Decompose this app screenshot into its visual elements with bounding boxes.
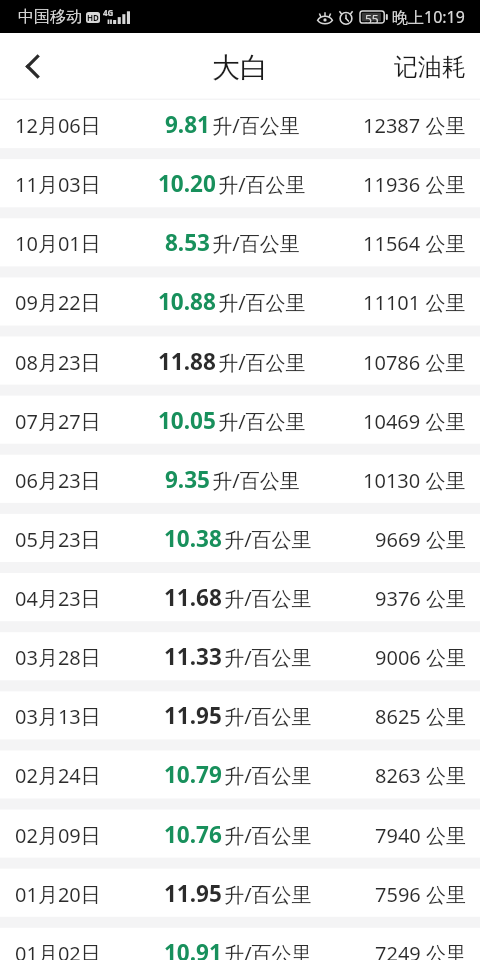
staticText: 9669 公里 — [375, 526, 466, 553]
button[interactable]: 10月01日 — [0, 218, 480, 266]
staticText: 9.35 升/百公里 — [165, 464, 300, 495]
staticText: 大白 — [212, 50, 268, 85]
staticText: 10.76 升/百公里 — [164, 819, 312, 850]
button[interactable]: 03月28日 — [0, 632, 480, 680]
button[interactable]: 01月02日 — [0, 928, 480, 960]
staticText: 05月23日 — [15, 526, 101, 553]
staticText: 11.95 升/百公里 — [164, 878, 312, 909]
staticText: 12387 公里 — [363, 112, 466, 139]
staticText: 11564 公里 — [363, 230, 466, 257]
staticText: 10469 公里 — [363, 408, 466, 435]
staticText: 8.53 升/百公里 — [165, 227, 300, 258]
button[interactable]: 12月06日 — [0, 100, 480, 148]
staticText: 11.95 升/百公里 — [164, 700, 312, 731]
staticText: 11.33 升/百公里 — [164, 641, 312, 672]
staticText: 8263 公里 — [375, 762, 466, 789]
staticText: 07月27日 — [15, 408, 101, 435]
staticText: 10130 公里 — [363, 467, 466, 494]
button[interactable]: 07月27日 — [0, 396, 480, 444]
button[interactable]: 09月22日 — [0, 277, 480, 325]
staticText: 55 — [365, 11, 379, 23]
staticText: 11101 公里 — [363, 289, 466, 316]
button[interactable]: 11月03日 — [0, 159, 480, 207]
staticText: 11936 公里 — [363, 171, 466, 198]
staticText: 10月01日 — [15, 230, 101, 257]
button[interactable]: 06月23日 — [0, 455, 480, 503]
staticText: 11.68 升/百公里 — [164, 582, 312, 613]
button[interactable]: Back — [0, 33, 62, 98]
staticText: 8625 公里 — [375, 703, 466, 730]
button[interactable]: 04月23日 — [0, 573, 480, 621]
staticText: 10.20 升/百公里 — [158, 168, 306, 199]
button[interactable]: 03月13日 — [0, 691, 480, 739]
staticText: 中国移动 — [18, 7, 82, 27]
staticText: HD — [87, 12, 99, 23]
staticText: 11月03日 — [15, 171, 101, 198]
staticText: 10.91 升/百公里 — [164, 937, 312, 960]
staticText: 9006 公里 — [375, 644, 466, 671]
staticText: 10.79 升/百公里 — [164, 759, 312, 790]
staticText: 4G — [103, 7, 114, 18]
staticText: 09月22日 — [15, 289, 101, 316]
staticText: 02月09日 — [15, 822, 101, 849]
staticText: 11.88 升/百公里 — [158, 346, 306, 377]
button[interactable]: 08月23日 — [0, 337, 480, 385]
button[interactable]: 01月20日 — [0, 869, 480, 917]
staticText: 7940 公里 — [375, 822, 466, 849]
staticText: 10.88 升/百公里 — [158, 286, 306, 317]
staticText: 9.81 升/百公里 — [165, 109, 300, 140]
staticText: 04月23日 — [15, 585, 101, 612]
staticText: 10.05 升/百公里 — [158, 405, 306, 436]
staticText: 记油耗 — [394, 52, 466, 82]
button[interactable]: 05月23日 — [0, 514, 480, 562]
button[interactable]: 记油耗 — [380, 33, 480, 98]
staticText: 10.38 升/百公里 — [164, 523, 312, 554]
staticText: 08月23日 — [15, 349, 101, 376]
staticText: 01月20日 — [15, 881, 101, 908]
button[interactable]: 02月09日 — [0, 810, 480, 858]
staticText: 12月06日 — [15, 112, 101, 139]
button[interactable]: 02月24日 — [0, 750, 480, 798]
staticText: 03月28日 — [15, 644, 101, 671]
staticText: 06月23日 — [15, 467, 101, 494]
staticText: 9376 公里 — [375, 585, 466, 612]
staticText: 10786 公里 — [363, 349, 466, 376]
staticText: 02月24日 — [15, 762, 101, 789]
staticText: 晚上10:19 — [392, 6, 465, 28]
staticText: 7596 公里 — [375, 881, 466, 908]
staticText: 03月13日 — [15, 703, 101, 730]
staticText: 7249 公里 — [375, 940, 466, 960]
staticText: 01月02日 — [15, 940, 101, 960]
